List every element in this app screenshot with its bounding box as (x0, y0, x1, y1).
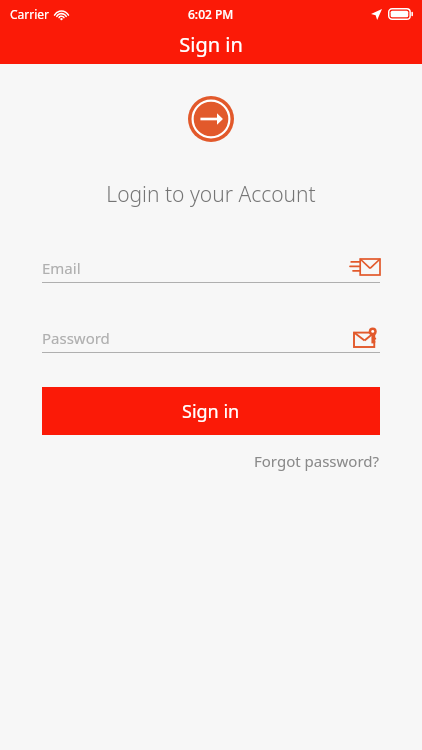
staticText: Email (42, 258, 350, 278)
staticText: 6:02 PM (188, 6, 234, 22)
staticText: Carrier (10, 6, 50, 22)
button[interactable]: Sign in (42, 387, 380, 435)
staticText: Password (42, 328, 354, 348)
staticText: Forgot password? (254, 451, 380, 471)
staticText: Sign in (182, 399, 240, 424)
button[interactable]: Forgot password? (254, 451, 380, 471)
staticText: Sign in (179, 31, 243, 58)
staticText: Login to your Account (106, 180, 316, 209)
